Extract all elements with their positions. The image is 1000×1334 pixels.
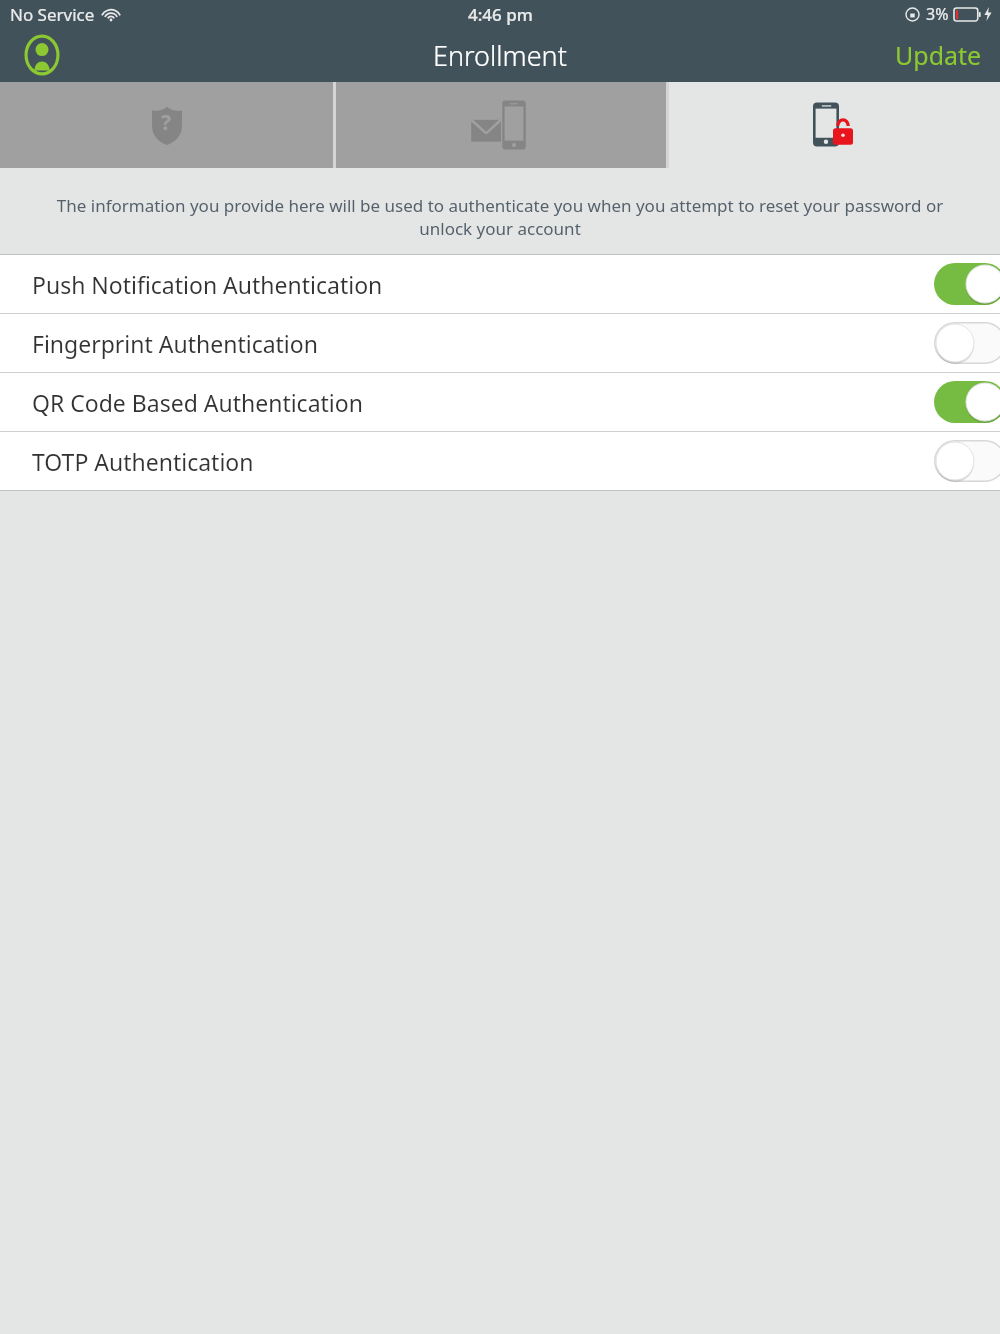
button[interactable]: Email and SMS	[336, 82, 666, 168]
staticText: QR Code Based Authentication	[32, 387, 924, 418]
staticText: Enrollment	[433, 37, 567, 74]
button[interactable]: Update	[877, 30, 1000, 80]
button[interactable]: Push Notification Authentication	[0, 255, 1000, 313]
button[interactable]: Off	[932, 438, 1000, 484]
button[interactable]: QR Code Based Authentication	[0, 373, 1000, 431]
staticText: Fingerprint Authentication	[32, 328, 924, 359]
staticText: Update	[895, 38, 982, 72]
button[interactable]: Device authentication	[669, 82, 1000, 168]
staticText: The information you provide here will be…	[36, 194, 964, 240]
button[interactable]: On	[932, 379, 1000, 425]
staticText: 3%	[926, 3, 949, 25]
button[interactable]: Fingerprint Authentication	[0, 314, 1000, 372]
staticText: 4:46 pm	[468, 3, 533, 26]
staticText: TOTP Authentication	[32, 446, 924, 477]
staticText: ?	[161, 108, 172, 137]
button[interactable]: Profile	[20, 33, 64, 77]
button[interactable]: Off	[932, 320, 1000, 366]
staticText: Push Notification Authentication	[32, 269, 924, 300]
staticText: No Service	[10, 3, 95, 26]
button[interactable]: TOTP Authentication	[0, 432, 1000, 490]
button[interactable]: On	[932, 261, 1000, 307]
button[interactable]: Security questions	[0, 82, 333, 168]
